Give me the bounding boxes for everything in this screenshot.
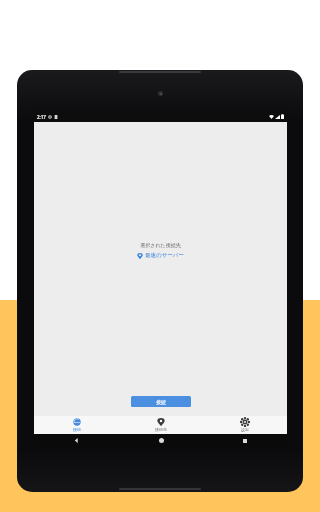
button[interactable]: 接続 [131,396,191,407]
button[interactable]: Back [34,434,119,447]
button[interactable]: Home [119,434,203,447]
button[interactable]: 最速のサーバー [137,252,184,259]
staticText: 接続 [73,427,81,432]
staticText: 接続 [156,399,166,405]
button[interactable]: 接続先 [119,416,203,434]
staticText: 最速のサーバー [145,252,184,259]
button[interactable]: Recents [203,434,287,447]
button[interactable]: 設定 [203,416,287,434]
staticText: 設定 [241,427,249,432]
button[interactable]: 接続 [34,416,119,434]
staticText: 接続先 [155,427,167,432]
staticText: 2:17 [37,114,46,120]
staticText: 選択された接続先 [140,242,181,248]
